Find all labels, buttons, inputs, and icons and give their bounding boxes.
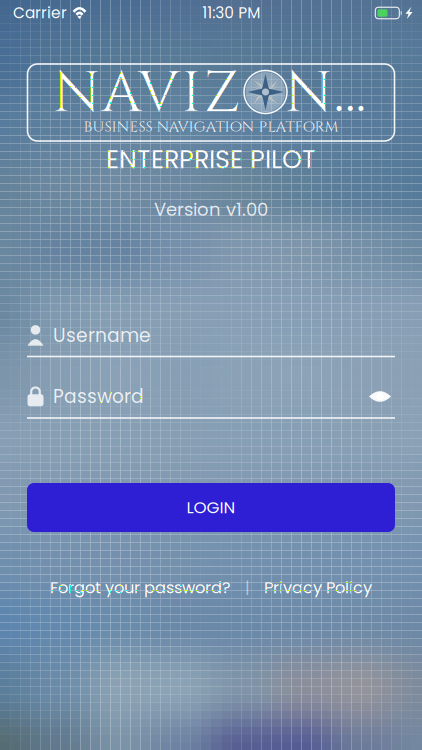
button[interactable]: Forgot your password? bbox=[50, 576, 231, 599]
staticText: NAVIZ bbox=[53, 56, 239, 132]
staticText: Privacy Policy bbox=[264, 576, 372, 599]
staticText: NE bbox=[285, 56, 368, 132]
staticText: ENTERPRISE PILOT bbox=[106, 142, 316, 177]
staticText: Password bbox=[53, 383, 144, 409]
button[interactable]: LOGIN bbox=[27, 483, 395, 532]
staticText: 11:30 PM bbox=[202, 2, 260, 24]
staticText: Username bbox=[53, 322, 151, 348]
staticText: Carrier bbox=[13, 2, 67, 24]
staticText: Version v1.00 bbox=[154, 197, 268, 222]
button[interactable]: Show password bbox=[365, 385, 395, 407]
staticText: BUSINESS NAVIGATION PLATFORM bbox=[83, 117, 338, 137]
staticText: | bbox=[245, 576, 250, 599]
staticText: Forgot your password? bbox=[50, 576, 231, 599]
staticText: LOGIN bbox=[186, 496, 235, 519]
button[interactable]: Privacy Policy bbox=[264, 576, 372, 599]
